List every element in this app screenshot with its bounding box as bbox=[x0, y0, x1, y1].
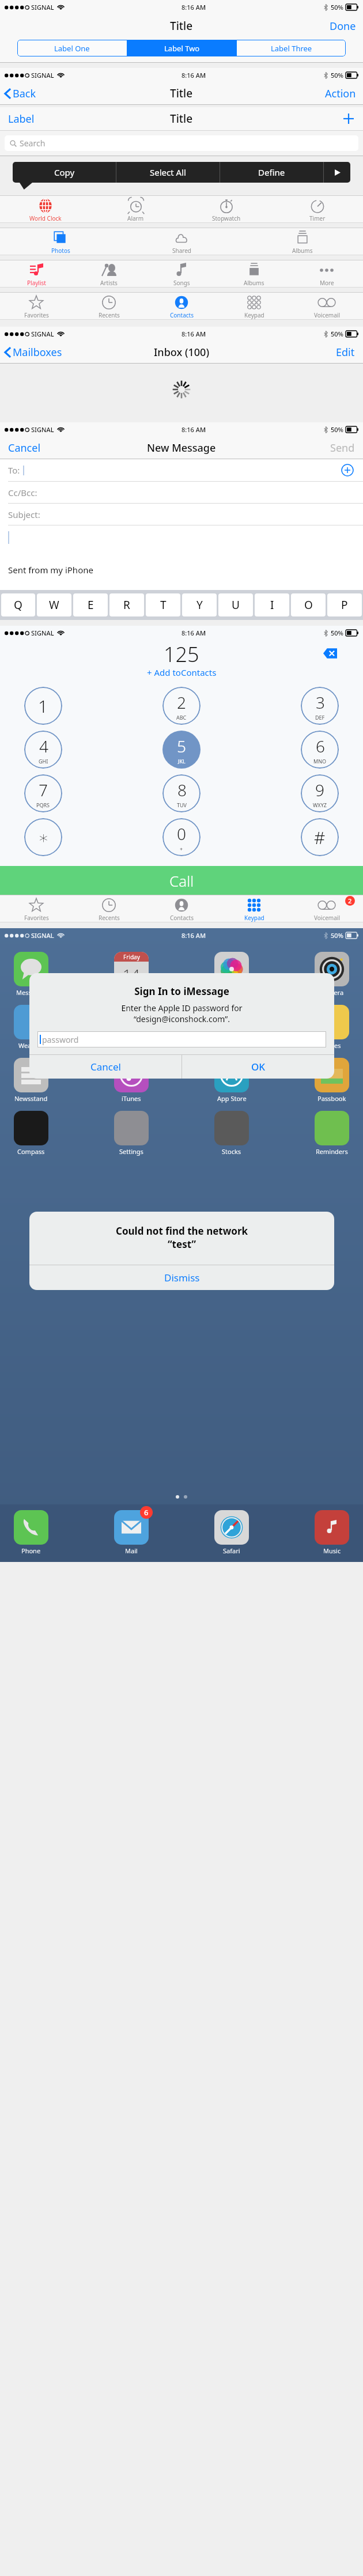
button[interactable]: Keypad bbox=[218, 293, 290, 319]
button[interactable]: Friday bbox=[114, 952, 149, 986]
button[interactable] bbox=[315, 952, 349, 986]
button[interactable]: Voicemail bbox=[290, 895, 363, 922]
staticText: GHI bbox=[39, 758, 48, 765]
button[interactable]: OK bbox=[182, 1055, 334, 1079]
button[interactable]: Select All bbox=[116, 162, 220, 183]
button[interactable] bbox=[114, 1005, 149, 1039]
button[interactable]: ∗ bbox=[24, 818, 62, 856]
button[interactable] bbox=[214, 1005, 249, 1039]
button[interactable]: Cancel bbox=[29, 1055, 181, 1079]
button[interactable]: Keypad bbox=[218, 895, 290, 922]
button[interactable] bbox=[214, 1058, 249, 1092]
button[interactable]: World Clock bbox=[0, 196, 90, 222]
button[interactable]: 6 bbox=[301, 731, 339, 769]
button[interactable] bbox=[114, 1058, 149, 1092]
button[interactable]: Y bbox=[182, 593, 217, 616]
button[interactable]: # bbox=[301, 818, 339, 856]
button[interactable]: More bbox=[324, 162, 350, 183]
button[interactable]: Label bbox=[8, 112, 35, 126]
button[interactable]: Photos bbox=[0, 228, 121, 255]
button[interactable]: Recents bbox=[73, 293, 145, 319]
button[interactable]: + Add toContacts bbox=[0, 667, 363, 678]
button[interactable]: Contacts bbox=[145, 293, 218, 319]
button[interactable]: More bbox=[290, 260, 363, 287]
button[interactable]: Add contact bbox=[341, 464, 354, 476]
button[interactable]: Favorites bbox=[0, 895, 73, 922]
button[interactable] bbox=[214, 1510, 249, 1545]
button[interactable] bbox=[114, 1111, 149, 1145]
button[interactable]: password bbox=[37, 1031, 326, 1047]
button[interactable]: O bbox=[291, 593, 326, 616]
button[interactable]: Label One bbox=[17, 40, 127, 56]
button[interactable]: Q bbox=[1, 593, 35, 616]
button[interactable] bbox=[14, 1510, 48, 1545]
button[interactable]: I bbox=[255, 593, 289, 616]
staticText: Friday bbox=[123, 953, 140, 961]
button[interactable]: Define bbox=[220, 162, 323, 183]
button[interactable]: 1 bbox=[24, 687, 62, 725]
staticText: Voicemail bbox=[314, 311, 340, 319]
button[interactable]: Send bbox=[330, 441, 355, 455]
staticText: Recents bbox=[99, 914, 120, 922]
button[interactable] bbox=[315, 1510, 349, 1545]
button[interactable]: Albums bbox=[242, 228, 363, 255]
button[interactable] bbox=[315, 1058, 349, 1092]
button[interactable]: Cancel bbox=[8, 441, 41, 455]
button[interactable]: Stopwatch bbox=[181, 196, 272, 222]
button[interactable] bbox=[214, 1111, 249, 1145]
button[interactable]: Call bbox=[0, 866, 363, 895]
button[interactable]: 5 bbox=[162, 731, 201, 769]
button[interactable]: Favorites bbox=[0, 293, 73, 319]
button[interactable]: Delete bbox=[323, 646, 337, 660]
button[interactable]: 3 bbox=[301, 687, 339, 725]
button[interactable]: 8 bbox=[162, 774, 201, 812]
button[interactable]: Copy bbox=[13, 162, 116, 183]
button[interactable] bbox=[114, 1510, 149, 1545]
button[interactable]: Label Two bbox=[127, 40, 236, 56]
button[interactable]: Add bbox=[342, 112, 355, 125]
button[interactable]: Recents bbox=[73, 895, 145, 922]
button[interactable]: Edit bbox=[336, 345, 355, 360]
button[interactable]: Timer bbox=[272, 196, 363, 222]
button[interactable]: T bbox=[146, 593, 180, 616]
button[interactable]: Shared bbox=[121, 228, 242, 255]
button[interactable]: Subject: bbox=[0, 504, 363, 525]
button[interactable]: E bbox=[73, 593, 108, 616]
button[interactable]: R bbox=[109, 593, 144, 616]
button[interactable]: Voicemail bbox=[290, 293, 363, 319]
button[interactable]: Mailboxes bbox=[5, 345, 62, 360]
button[interactable] bbox=[214, 952, 249, 986]
button[interactable]: Done bbox=[330, 19, 356, 33]
button[interactable] bbox=[14, 1058, 48, 1092]
button[interactable]: Action bbox=[325, 86, 356, 101]
button[interactable]: Alarm bbox=[90, 196, 181, 222]
button[interactable]: U bbox=[218, 593, 253, 616]
staticText: 8:16 AM bbox=[181, 931, 206, 940]
staticText: Photos bbox=[221, 988, 243, 997]
button[interactable]: Albums bbox=[218, 260, 290, 287]
button[interactable] bbox=[14, 1005, 48, 1039]
button[interactable]: 7 bbox=[24, 774, 62, 812]
button[interactable]: 0 bbox=[162, 818, 201, 856]
button[interactable]: Label Three bbox=[237, 40, 346, 56]
button[interactable] bbox=[14, 1111, 48, 1145]
staticText: PQRS bbox=[36, 801, 50, 808]
staticText: 8:16 AM bbox=[181, 425, 206, 434]
button[interactable] bbox=[315, 1111, 349, 1145]
button[interactable]: Songs bbox=[145, 260, 218, 287]
button[interactable] bbox=[14, 952, 48, 986]
button[interactable] bbox=[315, 1005, 349, 1039]
button[interactable]: Dismiss bbox=[29, 1265, 334, 1290]
button[interactable]: Contacts bbox=[145, 895, 218, 922]
button[interactable]: Playlist bbox=[0, 260, 73, 287]
button[interactable]: Cc/Bcc: bbox=[0, 482, 363, 503]
button[interactable]: 9 bbox=[301, 774, 339, 812]
button[interactable]: W bbox=[37, 593, 71, 616]
staticText: Weather bbox=[18, 1041, 44, 1050]
button[interactable]: Artists bbox=[73, 260, 145, 287]
button[interactable]: 2 bbox=[162, 687, 201, 725]
button[interactable]: Search bbox=[5, 135, 358, 151]
button[interactable]: 4 bbox=[24, 731, 62, 769]
button[interactable]: Back bbox=[5, 86, 36, 101]
button[interactable]: P bbox=[327, 593, 362, 616]
